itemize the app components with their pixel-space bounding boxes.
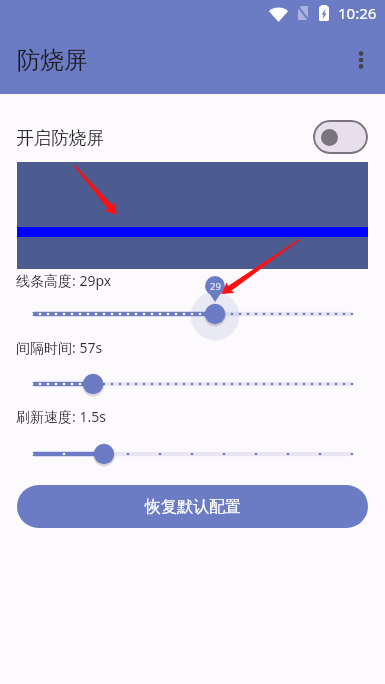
button[interactable] (0, 437, 385, 471)
staticText: 开启防烧屏 (16, 127, 104, 149)
button[interactable]: More options (342, 41, 380, 79)
staticText: 间隔时间: 57s (16, 338, 103, 357)
staticText: 恢复默认配置 (145, 497, 241, 517)
staticText: 29 (210, 280, 221, 293)
button[interactable]: 开启防烧屏 (0, 114, 385, 160)
button[interactable]: 恢复默认配置 (17, 485, 368, 528)
button[interactable]: Enable burn-in protection (313, 120, 368, 154)
staticText: 防烧屏 (17, 45, 88, 75)
button[interactable] (0, 367, 385, 401)
staticText: 刷新速度: 1.5s (16, 407, 106, 426)
button[interactable] (0, 297, 385, 331)
staticText: 10:26 (338, 3, 377, 23)
staticText: 线条高度: 29px (16, 271, 112, 290)
